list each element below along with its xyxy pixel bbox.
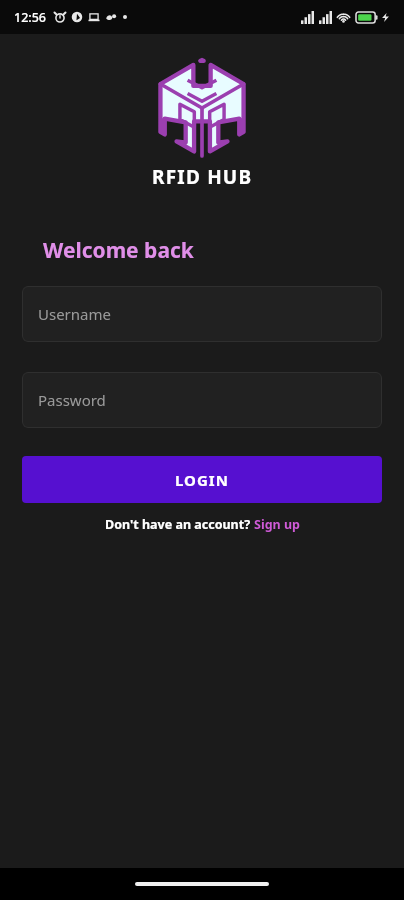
- staticText: Sign up: [254, 516, 300, 533]
- button[interactable]: Password: [22, 372, 382, 428]
- staticText: Welcome back: [43, 236, 194, 265]
- staticText: Username: [38, 304, 111, 324]
- button[interactable]: Username: [22, 286, 382, 342]
- staticText: LOGIN: [175, 470, 229, 490]
- button[interactable]: Don't have an account?: [0, 516, 404, 533]
- staticText: Password: [38, 390, 106, 410]
- staticText: Don't have an account?: [105, 516, 254, 533]
- other: RFID Hub logo: [154, 60, 250, 156]
- staticText: RFID HUB: [152, 164, 253, 190]
- staticText: 12:56: [14, 9, 47, 26]
- button[interactable]: LOGIN: [22, 456, 382, 503]
